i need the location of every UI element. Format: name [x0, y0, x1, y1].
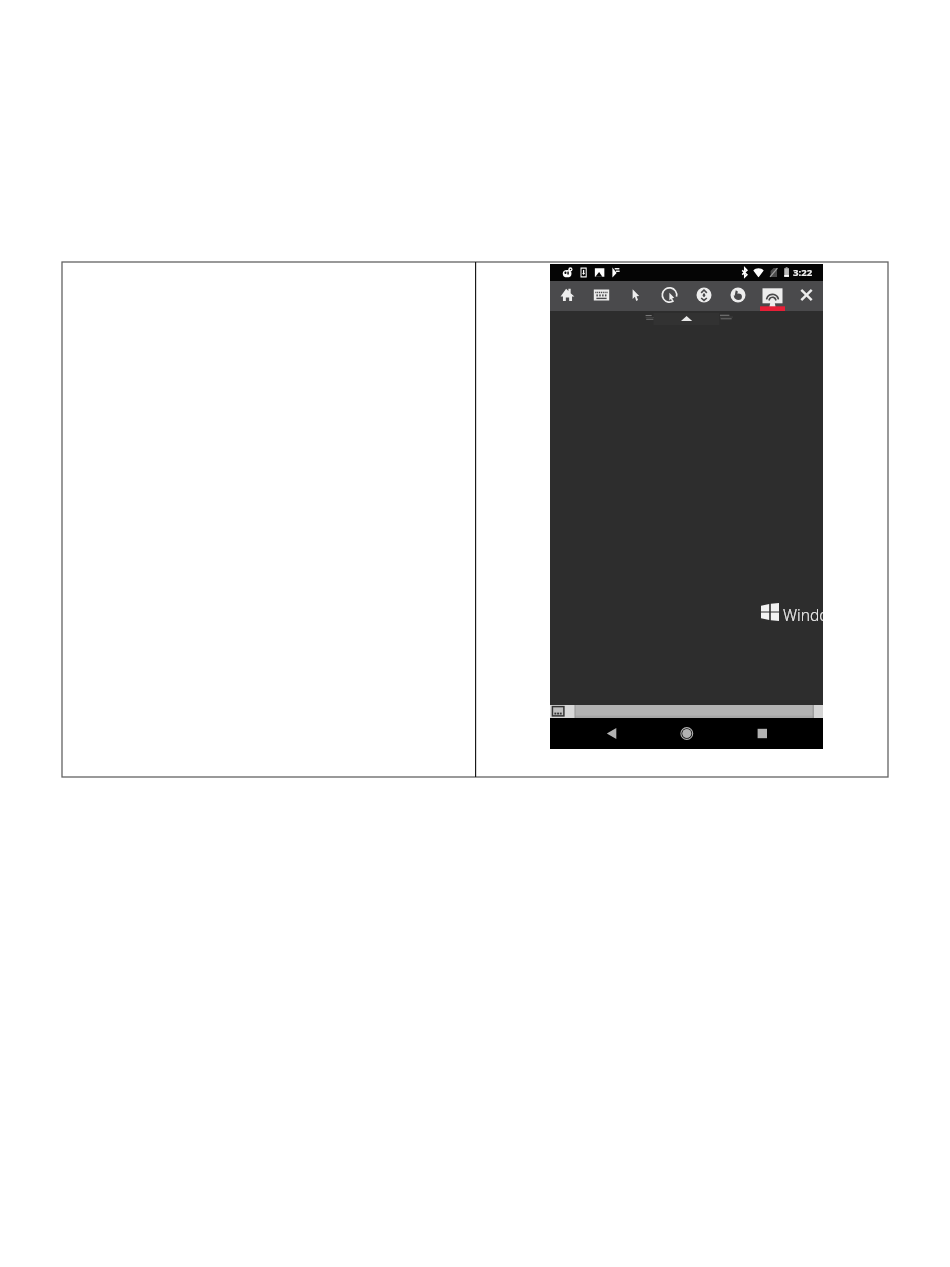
button[interactable]: Drag mode	[653, 281, 687, 311]
button[interactable]: Home	[551, 281, 585, 311]
button[interactable]: Scroll mode	[687, 281, 721, 311]
button[interactable]: Cast screen	[756, 281, 790, 311]
button[interactable]: Recent apps	[743, 718, 783, 749]
button[interactable]: Keyboard	[585, 281, 619, 311]
staticText: Windows	[783, 604, 823, 625]
staticText: 3:22	[793, 266, 813, 279]
button[interactable]: Touch mode	[721, 281, 755, 311]
button[interactable]: Pointer	[619, 281, 653, 311]
button[interactable]: Start	[551, 705, 566, 718]
button[interactable]: Remote screen	[550, 311, 823, 705]
button[interactable]: Close	[790, 281, 824, 311]
button[interactable]: Home	[667, 718, 707, 749]
button[interactable]: Back	[598, 718, 638, 749]
